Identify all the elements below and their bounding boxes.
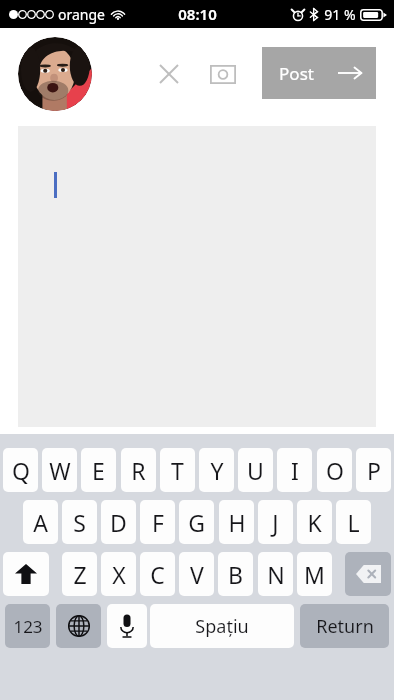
staticText: C: [150, 559, 165, 590]
button[interactable]: Q: [3, 448, 38, 492]
button[interactable]: T: [160, 448, 195, 492]
button[interactable]: J: [258, 500, 293, 544]
button[interactable]: B: [218, 552, 253, 596]
staticText: Y: [210, 455, 224, 486]
button[interactable]: H: [219, 500, 254, 544]
staticText: Spațiu: [195, 614, 249, 639]
button[interactable]: G: [179, 500, 214, 544]
button[interactable]: Shift: [3, 552, 49, 596]
button[interactable]: Voice input: [107, 604, 147, 648]
staticText: L: [347, 507, 360, 538]
staticText: U: [247, 455, 264, 486]
button[interactable]: Backspace: [345, 552, 391, 596]
staticText: E: [92, 455, 105, 486]
staticText: Return: [316, 614, 374, 639]
staticText: H: [228, 507, 246, 538]
staticText: N: [267, 559, 285, 590]
button[interactable]: Profile picture: [18, 37, 92, 111]
staticText: X: [112, 559, 126, 590]
staticText: I: [291, 455, 299, 486]
button[interactable]: A: [23, 500, 58, 544]
button[interactable]: Close: [149, 54, 189, 94]
staticText: K: [307, 507, 322, 538]
staticText: F: [152, 507, 164, 538]
staticText: M: [304, 559, 325, 590]
staticText: B: [228, 559, 243, 590]
button[interactable]: Z: [62, 552, 97, 596]
button[interactable]: Add photo: [203, 54, 243, 94]
button[interactable]: 123: [5, 604, 50, 648]
button[interactable]: L: [336, 500, 371, 544]
button[interactable]: C: [140, 552, 175, 596]
button[interactable]: I: [277, 448, 312, 492]
staticText: A: [33, 507, 48, 538]
button[interactable]: S: [62, 500, 97, 544]
button[interactable]: F: [140, 500, 175, 544]
staticText: orange: [58, 5, 105, 24]
button[interactable]: D: [101, 500, 136, 544]
button[interactable]: N: [258, 552, 293, 596]
staticText: G: [188, 507, 205, 538]
staticText: Q: [12, 455, 30, 486]
button[interactable]: E: [81, 448, 116, 492]
staticText: D: [110, 507, 127, 538]
button[interactable]: M: [297, 552, 332, 596]
button[interactable]: U: [238, 448, 273, 492]
staticText: V: [190, 559, 204, 590]
button[interactable]: X: [101, 552, 136, 596]
button[interactable]: [18, 126, 376, 427]
staticText: Post: [279, 62, 314, 85]
staticText: T: [171, 455, 184, 486]
staticText: S: [73, 507, 86, 538]
staticText: 91 %: [324, 5, 356, 24]
staticText: 123: [13, 615, 43, 638]
staticText: O: [326, 455, 344, 486]
button[interactable]: W: [42, 448, 77, 492]
button[interactable]: Change keyboard: [56, 604, 101, 648]
button[interactable]: Post: [262, 47, 376, 99]
staticText: 08:10: [178, 4, 217, 24]
staticText: Z: [73, 559, 87, 590]
staticText: J: [272, 507, 279, 538]
button[interactable]: Return: [300, 604, 389, 648]
button[interactable]: Y: [199, 448, 234, 492]
button[interactable]: R: [121, 448, 156, 492]
staticText: P: [367, 455, 381, 486]
staticText: W: [49, 455, 71, 486]
staticText: R: [131, 455, 146, 486]
button[interactable]: K: [297, 500, 332, 544]
button[interactable]: Spațiu: [150, 604, 294, 648]
button[interactable]: V: [179, 552, 214, 596]
button[interactable]: P: [356, 448, 391, 492]
button[interactable]: O: [317, 448, 352, 492]
